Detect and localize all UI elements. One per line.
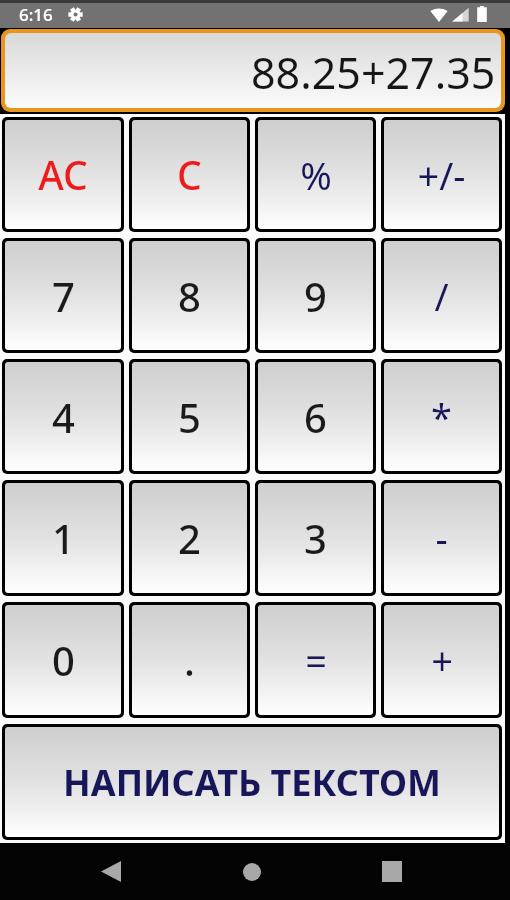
- staticText: 3: [304, 511, 327, 565]
- button[interactable]: %: [258, 120, 373, 229]
- button[interactable]: 88.25+27.35: [5, 33, 501, 108]
- staticText: +/-: [417, 149, 466, 201]
- staticText: НАПИСАТЬ ТЕКСТОМ: [63, 758, 441, 807]
- button[interactable]: 3: [258, 483, 373, 593]
- staticText: C: [177, 148, 202, 201]
- button[interactable]: .: [132, 605, 247, 715]
- staticText: 2: [178, 511, 201, 565]
- staticText: /: [434, 270, 449, 322]
- button[interactable]: 8: [132, 241, 247, 350]
- staticText: 6:16: [19, 3, 53, 26]
- staticText: =: [305, 634, 327, 686]
- staticText: AC: [38, 148, 88, 201]
- staticText: 9: [304, 269, 327, 323]
- button[interactable]: =: [258, 605, 373, 715]
- button[interactable]: +: [384, 605, 499, 715]
- button[interactable]: -: [384, 483, 499, 593]
- button[interactable]: C: [132, 120, 247, 229]
- button[interactable]: *: [384, 362, 499, 471]
- staticText: +: [431, 634, 453, 686]
- button[interactable]: 9: [258, 241, 373, 350]
- staticText: 8: [178, 269, 201, 323]
- staticText: %: [300, 149, 332, 201]
- button[interactable]: AC: [5, 120, 121, 229]
- staticText: -: [435, 512, 448, 564]
- button[interactable]: Home: [211, 843, 293, 900]
- staticText: .: [184, 633, 195, 687]
- staticText: 5: [178, 390, 201, 444]
- button[interactable]: /: [384, 241, 499, 350]
- button[interactable]: 0: [5, 605, 121, 715]
- staticText: 4: [52, 390, 75, 444]
- button[interactable]: 7: [5, 241, 121, 350]
- button[interactable]: Recents: [351, 843, 433, 900]
- button[interactable]: Back: [70, 843, 152, 900]
- staticText: 1: [52, 511, 75, 565]
- staticText: 88.25+27.35: [251, 43, 496, 102]
- button[interactable]: 6: [258, 362, 373, 471]
- button[interactable]: +/-: [384, 120, 499, 229]
- staticText: 7: [52, 269, 75, 323]
- button[interactable]: 2: [132, 483, 247, 593]
- staticText: *: [431, 391, 452, 443]
- button[interactable]: 1: [5, 483, 121, 593]
- staticText: 0: [52, 633, 75, 687]
- button[interactable]: 4: [5, 362, 121, 471]
- staticText: 6: [304, 390, 327, 444]
- button[interactable]: НАПИСАТЬ ТЕКСТОМ: [5, 727, 499, 837]
- button[interactable]: 5: [132, 362, 247, 471]
